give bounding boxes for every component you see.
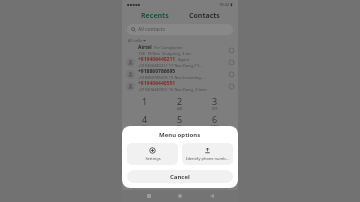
staticText: 2 [177, 95, 183, 107]
button[interactable]: Identify phone numb... [182, 143, 233, 165]
button[interactable]: All calls [128, 38, 238, 43]
button[interactable]: Back [207, 191, 217, 201]
staticText: All calls [128, 38, 142, 43]
button[interactable]: Airtel [126, 44, 234, 56]
staticText: 6 [212, 113, 218, 125]
staticText: Agent [178, 57, 190, 62]
staticText: Contacts [189, 11, 220, 20]
staticText: +918860786695 15 Nov Incoming... [138, 75, 204, 80]
staticText: +919406440551 [138, 80, 176, 87]
button[interactable]: +919406440551 [126, 80, 234, 92]
staticText: Identify phone numb... [186, 156, 229, 161]
staticText: For Complaints [154, 45, 183, 50]
button[interactable]: Contacts [183, 9, 226, 22]
button[interactable]: +918860786695 [126, 68, 234, 80]
staticText: 18:42 ▮ [219, 2, 233, 7]
staticText: +918860786695 [138, 68, 176, 75]
button[interactable]: All contacts [127, 24, 233, 35]
button[interactable]: Home [175, 191, 185, 201]
staticText: 198 18 Nov Outgoing, 3 sec [138, 51, 192, 56]
button[interactable]: Call details [229, 48, 234, 53]
staticText: JKL [177, 125, 182, 129]
button[interactable]: Cancel [127, 170, 233, 183]
staticText: +919406440211 17 Nov Dang,7 S... [138, 63, 203, 68]
staticText: Menu options [159, 131, 201, 139]
button[interactable]: Call details [229, 84, 234, 89]
staticText: 3 [212, 95, 218, 107]
staticText: MNO [211, 125, 219, 129]
staticText: 1 [142, 95, 148, 107]
staticText: All contacts [138, 26, 165, 33]
staticText: 5 [177, 113, 183, 125]
button[interactable]: 1 [128, 94, 162, 112]
staticText: +919406440211 [138, 56, 176, 63]
staticText: Recents [141, 11, 169, 20]
button[interactable]: 5 [162, 112, 197, 130]
staticText: Settings [145, 156, 161, 161]
staticText: ABC [177, 107, 183, 111]
button[interactable]: Call details [229, 60, 234, 65]
button[interactable]: Recents [135, 9, 175, 22]
button[interactable]: 3 [197, 94, 232, 112]
button[interactable]: +919406440211 [126, 56, 234, 68]
button[interactable]: Settings [127, 143, 178, 165]
staticText: Airtel [138, 44, 152, 51]
button[interactable]: 4 [128, 112, 162, 130]
staticText: 4 [142, 113, 148, 125]
button[interactable]: 2 [162, 94, 197, 112]
staticText: Cancel [170, 173, 190, 181]
staticText: ▪▪▪▪▪ [127, 2, 141, 7]
staticText: GHI [142, 125, 148, 129]
staticText: DEF [212, 107, 218, 111]
staticText: +919406440551 16 Nov Dang, 3 tiem [138, 87, 207, 92]
button[interactable]: Call details [229, 72, 234, 77]
button[interactable]: Recent apps [144, 191, 154, 201]
button[interactable]: 6 [197, 112, 232, 130]
